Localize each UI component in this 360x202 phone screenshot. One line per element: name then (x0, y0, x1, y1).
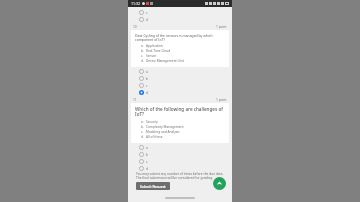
staticText: d (146, 167, 148, 171)
staticText: b. (141, 125, 144, 129)
button[interactable]: a (138, 144, 149, 151)
staticText: 11 (133, 98, 137, 102)
staticText: The final submission will be considered … (136, 176, 214, 180)
staticText: Modeling and Analysis (146, 130, 180, 134)
button[interactable]: b (138, 75, 149, 82)
button[interactable]: c (138, 9, 149, 16)
staticText: a. (141, 120, 144, 124)
button[interactable]: d (138, 165, 149, 172)
staticText: Security (146, 120, 158, 124)
staticText: 10 (133, 25, 137, 29)
button[interactable]: Submit Request (136, 182, 170, 190)
button[interactable]: Scroll to top (213, 177, 226, 190)
button[interactable]: d (138, 89, 149, 96)
staticText: d (146, 91, 148, 95)
staticText: a (146, 70, 148, 74)
staticText: Application (146, 44, 163, 48)
staticText: 1 point (216, 25, 227, 29)
staticText: c (146, 84, 148, 88)
button[interactable]: 1 point (216, 98, 227, 102)
staticText: You may submit any number of times befor… (136, 172, 224, 176)
staticText: Which of the following are challenges of… (135, 106, 225, 118)
staticText: d. (141, 59, 144, 63)
staticText: d (146, 18, 148, 22)
staticText: c. (141, 54, 144, 58)
staticText: c (146, 160, 148, 164)
staticText: a (146, 146, 148, 150)
button[interactable]: c (138, 82, 149, 89)
button[interactable]: 1 point (216, 25, 227, 29)
button[interactable]: b (138, 151, 149, 158)
staticText: d. (141, 135, 144, 139)
button[interactable]: a (138, 68, 149, 75)
staticText: 11:32 (131, 1, 140, 6)
staticText: Data Cycling of the sensors is managed b… (135, 33, 225, 42)
staticText: b. (141, 49, 144, 53)
staticText: c (146, 11, 148, 15)
staticText: b (146, 77, 148, 81)
staticText: 1 point (216, 98, 227, 102)
staticText: a. (141, 44, 144, 48)
staticText: Real-Time Cloud (146, 49, 171, 53)
staticText: Complexity Management (146, 125, 184, 129)
staticText: Device Management Unit (146, 59, 184, 63)
button[interactable]: c (138, 158, 149, 165)
staticText: c. (141, 130, 144, 134)
staticText: Sensor (146, 54, 157, 58)
button[interactable]: d (138, 16, 149, 23)
staticText: b (146, 153, 148, 157)
staticText: All of these (146, 135, 163, 139)
staticText: Submit Request (140, 184, 166, 188)
